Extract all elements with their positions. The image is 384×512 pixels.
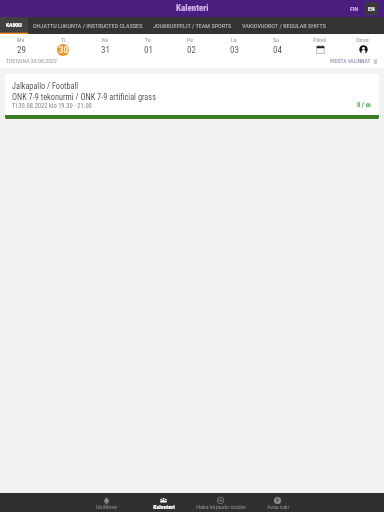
staticText: 30 xyxy=(59,45,68,56)
staticText: Pe xyxy=(187,36,194,43)
button[interactable]: La xyxy=(212,34,255,56)
staticText: 31 xyxy=(101,45,110,56)
button[interactable]: OHJATTU LIIKUNTA / INSTRUCTED CLASSES xyxy=(28,17,148,34)
staticText: 02 xyxy=(187,45,196,56)
staticText: Omat xyxy=(356,36,369,43)
button[interactable]: Pe xyxy=(169,34,212,56)
staticText: Haka kirjaudu sisään xyxy=(196,503,246,510)
button[interactable]: Kalenteri xyxy=(135,493,192,512)
staticText: Kalenteri xyxy=(153,503,175,510)
button[interactable]: Ma xyxy=(0,34,42,56)
staticText: VAKIOVUOROT / REGULAR SHIFTS xyxy=(242,22,326,29)
staticText: 04 xyxy=(273,45,282,56)
button[interactable]: To xyxy=(126,34,169,56)
button[interactable]: Jalkapallo / Football xyxy=(5,74,379,119)
staticText: OHJATTU LIIKUNTA / INSTRUCTED CLASSES xyxy=(33,22,143,29)
button[interactable]: VAKIOVUOROT / REGULAR SHIFTS xyxy=(237,17,331,34)
staticText: Kalenteri xyxy=(176,3,209,14)
button[interactable]: JOUKKUEPELIT / TEAM SPORTS xyxy=(148,17,237,34)
staticText: Ti xyxy=(61,36,66,43)
staticText: Avaa tuki xyxy=(267,503,289,510)
staticText: 03 xyxy=(230,45,239,56)
staticText: Ke xyxy=(102,36,109,43)
staticText: Jalkapallo / Football xyxy=(12,81,79,91)
button[interactable]: KAIKKI xyxy=(0,17,28,34)
staticText: KAIKKI xyxy=(6,22,22,29)
staticText: Ma xyxy=(17,36,25,43)
staticText: 01 xyxy=(144,45,153,56)
staticText: JOUKKUEPELIT / TEAM SPORTS xyxy=(153,22,232,29)
button[interactable]: Päivä xyxy=(298,34,341,56)
button[interactable]: FIN xyxy=(347,3,362,14)
button[interactable]: Su xyxy=(255,34,298,56)
staticText: Su xyxy=(273,36,280,43)
button[interactable]: POISTA VALINNAT xyxy=(330,58,378,64)
staticText: TIISTAINA 30.08.2022 xyxy=(6,58,57,65)
staticText: POISTA VALINNAT xyxy=(330,58,371,64)
staticText: To xyxy=(145,36,151,43)
staticText: La xyxy=(231,36,237,43)
button[interactable]: Omat xyxy=(341,34,384,56)
staticText: UniMove xyxy=(96,503,117,510)
button[interactable]: Ke xyxy=(84,34,126,56)
staticText: 0 / ∞ xyxy=(357,101,372,109)
staticText: Ti 30.08.2022 klo 19.30 - 21.00 xyxy=(12,102,92,110)
staticText: EN xyxy=(368,5,375,12)
button[interactable]: Avaa tuki xyxy=(249,493,306,512)
button[interactable]: EN xyxy=(365,2,378,15)
button[interactable]: Haka kirjaudu sisään xyxy=(192,493,249,512)
staticText: Päivä xyxy=(313,36,326,43)
staticText: 29 xyxy=(17,45,26,56)
staticText: ONK 7-9 tekonurmi / ONK 7-9 artificial g… xyxy=(12,92,156,102)
staticText: FIN xyxy=(350,5,359,12)
button[interactable]: Ti xyxy=(42,34,84,56)
button[interactable]: UniMove xyxy=(78,493,135,512)
